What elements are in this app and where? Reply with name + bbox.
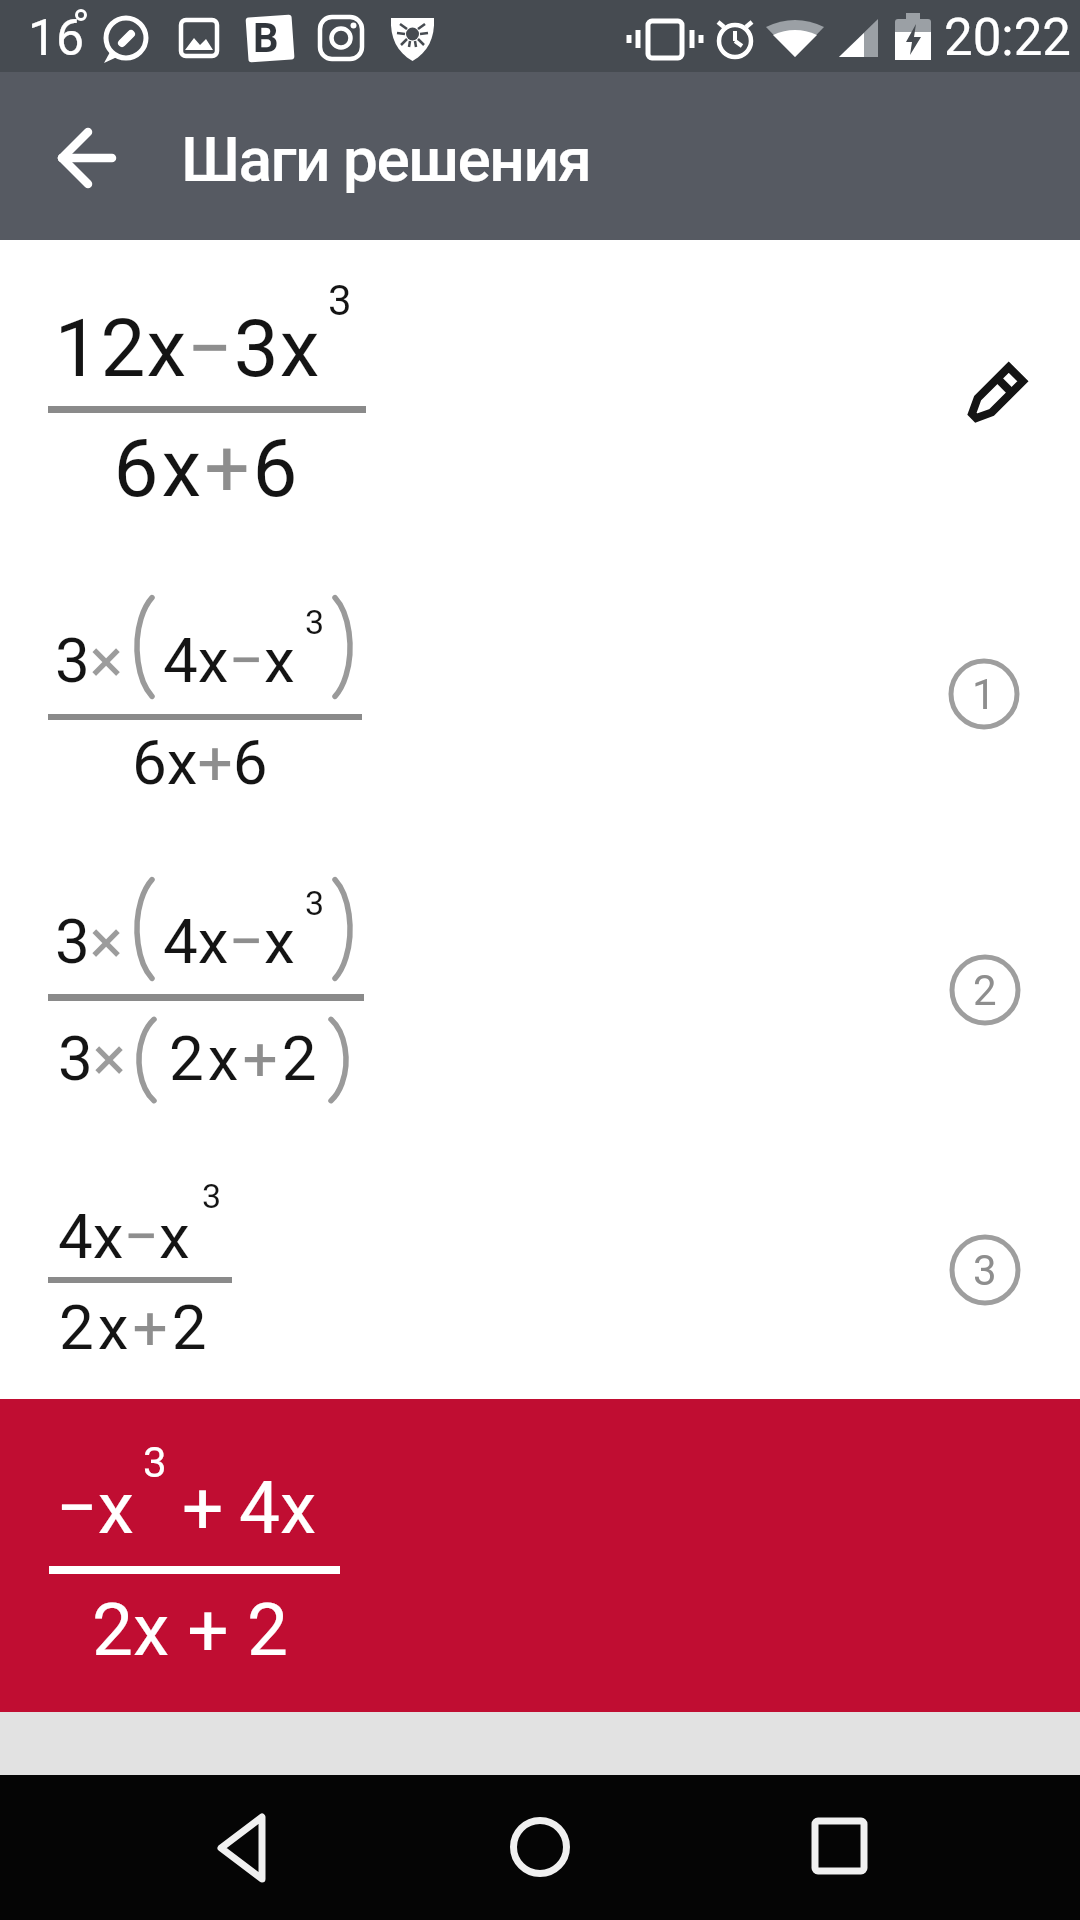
button[interactable]: 3 [933, 1218, 1037, 1322]
button[interactable] [946, 344, 1046, 444]
staticText: Шаги решения [181, 123, 591, 196]
staticText: + [182, 1465, 224, 1551]
button[interactable] [495, 1800, 585, 1890]
staticText: 12x−3x [54, 302, 320, 396]
staticText: 1 [972, 670, 996, 719]
staticText: 6x+6 [112, 422, 299, 516]
staticText: 4x−x [163, 905, 295, 978]
staticText: 3× [55, 624, 123, 697]
staticText: B [253, 15, 279, 62]
staticText: 3× [58, 1022, 126, 1095]
staticText: 4x−x [58, 1200, 190, 1273]
staticText: 3 [328, 276, 352, 325]
button[interactable] [197, 1799, 287, 1889]
staticText: 4x [239, 1465, 317, 1551]
staticText: 2x+2 [169, 1022, 321, 1095]
staticText: 20:22 [944, 8, 1072, 68]
staticText: 3 [202, 1176, 222, 1216]
staticText: 3 [305, 883, 325, 923]
button[interactable]: 2 [933, 938, 1037, 1042]
staticText: 3 [305, 602, 325, 642]
staticText: 6x+6 [132, 726, 268, 799]
staticText: 2x + 2 [92, 1587, 288, 1673]
button[interactable] [0, 1399, 1080, 1712]
button[interactable]: 1 [932, 642, 1036, 746]
staticText: −x [56, 1465, 134, 1551]
staticText: 2x+2 [59, 1291, 211, 1364]
button[interactable] [795, 1801, 885, 1891]
staticText: 4x−x [163, 624, 295, 697]
staticText: 3 [143, 1438, 167, 1487]
staticText: 16 [28, 9, 85, 68]
staticText: 3× [55, 905, 123, 978]
staticText: 2 [973, 966, 997, 1015]
button[interactable] [36, 108, 136, 208]
staticText: 3 [973, 1246, 997, 1295]
